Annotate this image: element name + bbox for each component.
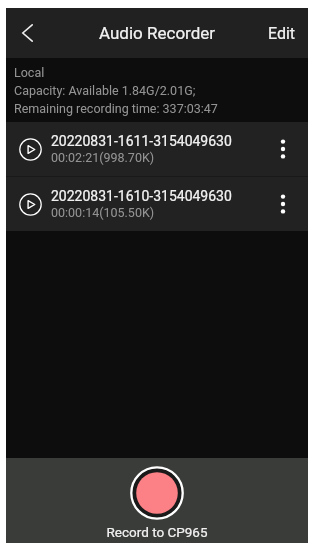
staticText: Record to CP965 [106, 524, 208, 540]
staticText: Edit [268, 24, 296, 43]
button[interactable]: 20220831-1611-3154049630 [6, 122, 308, 176]
staticText: Capacity: Available 1.84G/2.01G; [14, 83, 196, 98]
button[interactable]: More options [268, 129, 298, 169]
staticText: Audio Recorder [99, 23, 216, 43]
button[interactable]: Back [6, 8, 48, 58]
button[interactable]: More options [268, 184, 298, 224]
staticText: Remaining recording time: 337:03:47 [14, 101, 218, 116]
staticText: 20220831-1611-3154049630 [51, 133, 232, 149]
staticText: 20220831-1610-3154049630 [51, 188, 232, 204]
staticText: 00:00:14(105.50K) [51, 205, 155, 220]
staticText: 00:02:21(998.70K) [51, 150, 155, 165]
button[interactable]: Edit [256, 8, 308, 58]
staticText: Local [14, 65, 45, 80]
button[interactable]: 20220831-1610-3154049630 [6, 177, 308, 231]
button[interactable]: Record [130, 466, 184, 520]
